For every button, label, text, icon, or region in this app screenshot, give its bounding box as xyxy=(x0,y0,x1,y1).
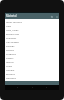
button[interactable]: Search xyxy=(49,14,54,19)
button[interactable]: Home xyxy=(30,85,35,90)
staticText: Chips xyxy=(6,64,13,67)
staticText: Nav drawer xyxy=(6,40,19,43)
staticText: Pickers xyxy=(6,48,14,51)
staticText: Switches xyxy=(6,76,16,79)
staticText: Lists, cards xyxy=(6,28,19,31)
staticText: Material xyxy=(6,14,17,18)
button[interactable]: Switches xyxy=(5,75,59,79)
staticText: Input controls xyxy=(6,20,22,23)
button[interactable]: Bottom nav xyxy=(5,31,59,35)
button[interactable]: Lists, cards xyxy=(5,27,59,31)
button[interactable]: Tabs xyxy=(5,23,59,27)
button[interactable]: More options xyxy=(54,14,59,19)
button[interactable]: Sliders xyxy=(5,55,59,59)
button[interactable]: Pickers xyxy=(5,47,59,51)
button[interactable]: Toolbar xyxy=(5,67,59,71)
button[interactable]: Recents xyxy=(44,85,49,90)
staticText: Progress xyxy=(6,52,16,55)
button[interactable]: Buttons xyxy=(5,71,59,75)
staticText: Tabs xyxy=(6,24,12,27)
button[interactable]: Back xyxy=(15,85,20,90)
staticText: Menus xyxy=(6,60,14,63)
button[interactable]: Dialogs xyxy=(5,43,59,47)
button[interactable]: Menus xyxy=(5,59,59,63)
button[interactable]: Snackbar xyxy=(5,35,59,39)
button[interactable]: Input controls xyxy=(5,19,59,23)
staticText: Toolbar xyxy=(6,68,15,71)
staticText: Dialogs xyxy=(6,44,15,47)
staticText: Bottom nav xyxy=(6,32,20,35)
button[interactable]: Nav drawer xyxy=(5,39,59,43)
button[interactable]: Progress xyxy=(5,51,59,55)
staticText: Sliders xyxy=(6,56,14,59)
button[interactable]: Chips xyxy=(5,63,59,67)
staticText: Buttons xyxy=(6,72,15,75)
staticText: Snackbar xyxy=(6,36,17,39)
